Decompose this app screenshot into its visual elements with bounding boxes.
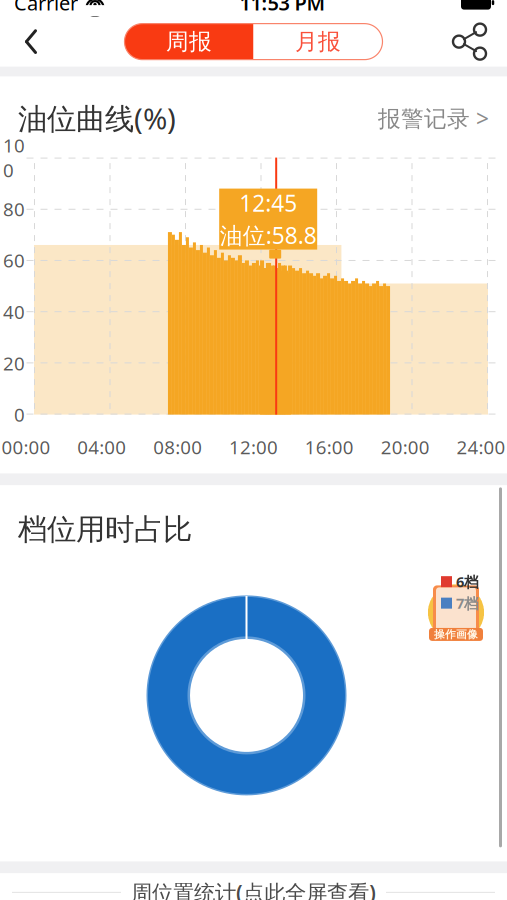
- button[interactable]: 报警记录 >: [378, 103, 489, 133]
- staticText: 月报: [295, 28, 341, 55]
- button[interactable]: Back: [18, 27, 44, 57]
- staticText: 40: [3, 299, 25, 324]
- staticText: 周位置统计(点此全屏查看): [131, 878, 376, 900]
- staticText: 报警记录 >: [378, 103, 489, 133]
- staticText: 12:00: [229, 435, 278, 459]
- staticText: 操作画像: [434, 628, 478, 641]
- staticText: 00:00: [1, 435, 50, 459]
- button[interactable]: 月报: [253, 24, 382, 60]
- staticText: 08:00: [153, 435, 202, 459]
- staticText: 60: [3, 248, 25, 273]
- staticText: 24:00: [456, 435, 505, 459]
- staticText: 油位:58.8: [220, 220, 317, 250]
- staticText: 12:45: [239, 188, 297, 218]
- button[interactable]: 周位置统计(点此全屏查看): [0, 873, 507, 900]
- staticText: 6档: [456, 572, 479, 591]
- staticText: 16:00: [305, 435, 354, 459]
- staticText: 20:00: [381, 435, 430, 459]
- staticText: 04:00: [77, 435, 126, 459]
- staticText: 油位曲线(%): [18, 99, 176, 138]
- staticText: 100: [3, 133, 25, 182]
- staticText: 档位用时占比: [18, 511, 192, 547]
- button[interactable]: 周报: [124, 24, 253, 60]
- staticText: Carrier: [14, 0, 78, 16]
- staticText: 80: [3, 197, 25, 221]
- button[interactable]: Share: [451, 23, 489, 61]
- staticText: 20: [3, 351, 25, 376]
- staticText: 11:53 PM: [239, 0, 325, 16]
- staticText: 0: [14, 402, 25, 427]
- staticText: 周报: [166, 28, 212, 55]
- staticText: 7档: [456, 593, 479, 613]
